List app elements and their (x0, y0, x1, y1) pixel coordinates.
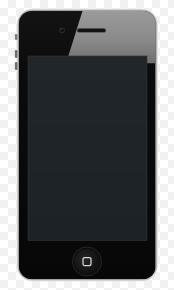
button[interactable]: iPhone device illustration (0, 0, 174, 290)
